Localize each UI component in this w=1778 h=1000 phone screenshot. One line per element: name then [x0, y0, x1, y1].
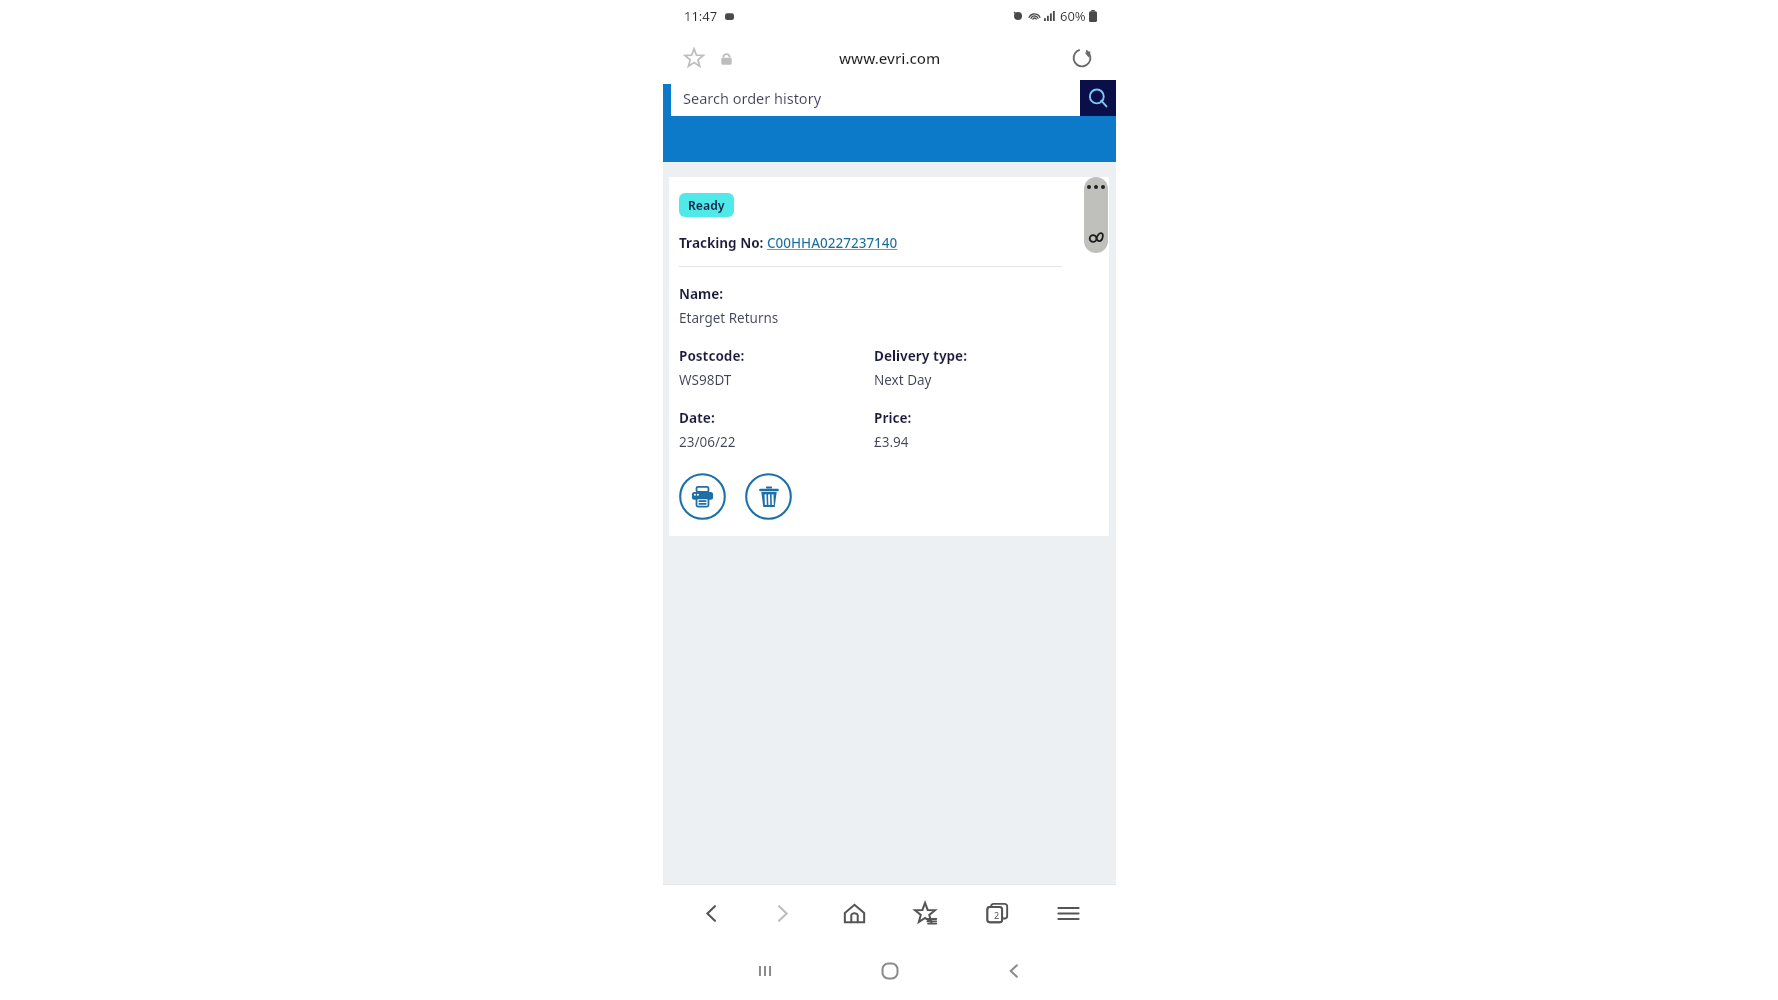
staticText: 11:47	[684, 7, 718, 25]
button[interactable]: Bookmark	[677, 41, 711, 75]
staticText: WS98DT	[679, 371, 732, 389]
staticText: Price:	[874, 409, 912, 427]
button[interactable]: Forward	[758, 889, 806, 937]
staticText: Next Day	[874, 371, 932, 389]
staticText: www.evri.com	[839, 48, 941, 68]
button[interactable]: Back	[991, 948, 1037, 994]
button[interactable]: Floating shortcut menu	[1084, 177, 1108, 253]
staticText: Postcode:	[679, 347, 745, 365]
button[interactable]: Ready	[679, 193, 734, 217]
button[interactable]: Delete	[745, 473, 792, 520]
staticText: Tracking No:	[679, 234, 767, 252]
staticText: Etarget Returns	[679, 309, 779, 327]
button[interactable]: Reload	[1064, 40, 1100, 76]
button[interactable]: Bookmarks	[901, 889, 949, 937]
button[interactable]: Home	[867, 948, 913, 994]
staticText: Delivery type:	[874, 347, 967, 365]
button[interactable]: C00HHA0227237140	[767, 234, 898, 252]
staticText: £3.94	[874, 433, 909, 451]
button[interactable]: Print label	[679, 473, 726, 520]
button[interactable]: Back	[687, 889, 735, 937]
button[interactable]: Recent apps	[742, 948, 788, 994]
button[interactable]: Search order history	[671, 80, 1080, 116]
button[interactable]: Menu	[1044, 889, 1092, 937]
button[interactable]: Site security	[713, 45, 739, 71]
button[interactable]: Search	[1080, 80, 1116, 116]
staticText: 2	[994, 909, 1000, 921]
staticText: Date:	[679, 409, 715, 427]
staticText: Ready	[688, 197, 725, 213]
staticText: Name:	[679, 285, 724, 303]
button[interactable]: Home	[830, 889, 878, 937]
staticText: 23/06/22	[679, 433, 736, 451]
staticText: 60%	[1060, 7, 1086, 25]
button[interactable]: Tabs	[973, 889, 1021, 937]
staticText: Search order history	[683, 88, 822, 108]
